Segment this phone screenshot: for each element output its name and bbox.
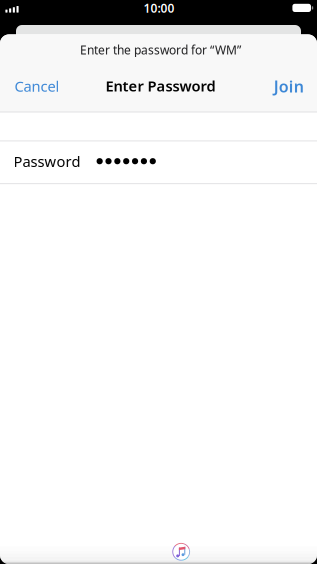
button[interactable]: Password: [0, 140, 317, 182]
staticText: Join: [274, 76, 304, 97]
staticText: Password: [14, 151, 81, 171]
staticText: Cancel: [14, 76, 59, 96]
staticText: 10:00: [143, 0, 174, 16]
staticText: Enter Password: [105, 76, 215, 96]
button[interactable]: Cancel: [0, 65, 72, 107]
staticText: Enter the password for “WM”: [80, 42, 241, 58]
button[interactable]: Join: [261, 65, 317, 107]
